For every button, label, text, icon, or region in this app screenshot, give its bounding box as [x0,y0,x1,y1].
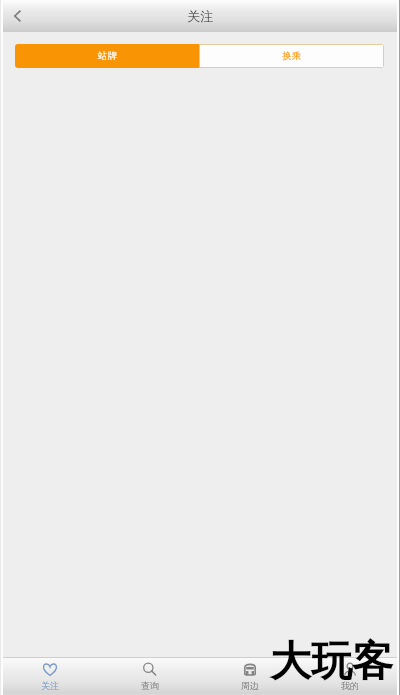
staticText: 关注 [41,680,59,691]
button[interactable]: 查询 [100,658,200,695]
button[interactable]: 我的 [300,658,400,695]
staticText: 关注 [187,8,213,24]
button[interactable]: 关注 [0,658,100,695]
button[interactable]: 换乘 [199,44,384,68]
staticText: 我的 [341,680,359,691]
button[interactable]: 站牌 [15,44,199,68]
button[interactable]: 周边 [200,658,300,695]
staticText: 换乘 [282,50,301,62]
staticText: 大玩客 [270,636,393,688]
button[interactable]: Back [3,2,31,30]
staticText: 站牌 [98,50,117,62]
staticText: 周边 [241,680,259,691]
staticText: 查询 [141,680,159,691]
